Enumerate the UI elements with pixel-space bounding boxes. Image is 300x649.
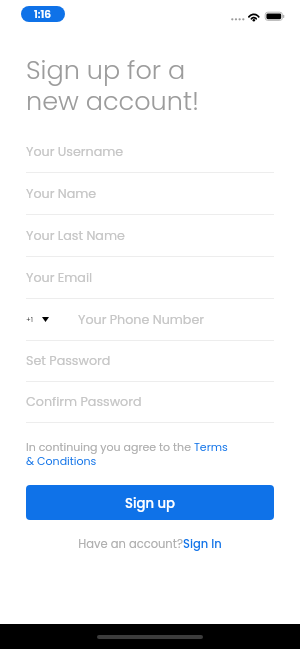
staticText: Your Phone Number [78,311,205,329]
button[interactable]: Your Last Name [26,215,274,257]
button[interactable]: Select country code [26,299,52,340]
button[interactable]: Your Username [26,131,274,173]
button[interactable]: Sign up [26,485,274,520]
staticText: Sign up [125,494,175,512]
staticText: Confirm Password [26,393,142,411]
staticText: 1:16 [34,7,52,22]
button[interactable]: Have an account?Sign In [0,536,300,552]
staticText: Set Password [26,352,111,370]
staticText: Your Name [26,185,97,203]
staticText: Your Email [26,269,93,287]
staticText: Have an account?Sign In [78,536,222,552]
button[interactable]: Your Name [26,173,274,215]
button[interactable]: In continuing you agree to the Terms & C… [26,439,236,469]
staticText: Your Last Name [26,227,125,245]
button[interactable]: Set Password [26,341,274,382]
staticText: Your Username [26,143,124,161]
staticText: +1 [26,315,34,325]
button[interactable]: Your Email [26,257,274,299]
staticText: Sign up for a new account! [26,52,200,119]
button[interactable]: Confirm Password [26,382,274,423]
